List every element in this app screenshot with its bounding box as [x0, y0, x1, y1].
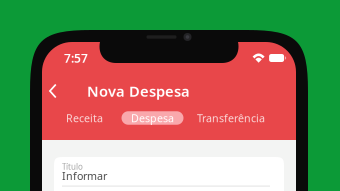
staticText: Título [62, 161, 83, 172]
staticText: Informar [62, 169, 107, 183]
staticText: Receita [66, 111, 103, 125]
staticText: 7:57 [64, 50, 88, 66]
button[interactable]: Título [54, 157, 284, 186]
staticText: Transferência [197, 111, 265, 125]
button[interactable]: Despesa [116, 109, 189, 127]
button[interactable]: Receita [53, 109, 116, 127]
button[interactable]: Back [42, 79, 73, 103]
staticText: Despesa [131, 111, 174, 125]
staticText: Nova Despesa [87, 81, 190, 101]
button[interactable]: Transferência [189, 109, 273, 127]
